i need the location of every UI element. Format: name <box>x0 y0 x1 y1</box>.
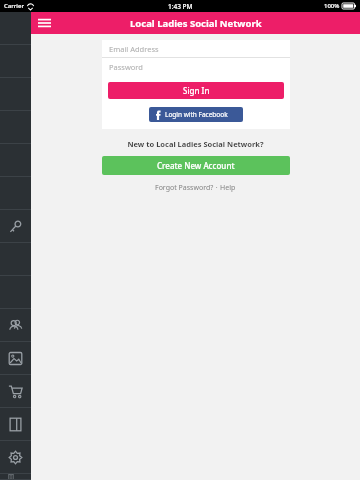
button[interactable]: Password <box>102 58 290 75</box>
staticText: · <box>214 183 220 193</box>
staticText: 100% <box>324 2 340 10</box>
button[interactable]: Shop <box>0 375 31 408</box>
staticText: Login with Facebook <box>165 110 228 119</box>
staticText: Password <box>109 62 143 72</box>
button[interactable]: Friends <box>0 309 31 342</box>
button[interactable]: Create New Account <box>102 156 290 175</box>
staticText: Help <box>220 183 236 193</box>
button[interactable]: Settings <box>0 441 31 474</box>
button[interactable]: Email Address <box>102 40 290 57</box>
button[interactable]: More <box>0 474 31 480</box>
staticText: Forgot Password? <box>155 183 214 193</box>
staticText: 1:43 PM <box>168 2 193 11</box>
button[interactable]: Sign In <box>108 82 284 99</box>
staticText: New to Local Ladies Social Network? <box>127 139 264 149</box>
staticText: Local Ladies Social Network <box>130 17 262 30</box>
staticText: Sign In <box>183 85 210 96</box>
button[interactable]: Login with Facebook <box>149 107 243 122</box>
button[interactable]: Keys <box>0 210 31 243</box>
button[interactable]: Help <box>220 183 236 193</box>
button[interactable]: Photos <box>0 342 31 375</box>
staticText: Email Address <box>109 44 159 54</box>
button[interactable]: Book <box>0 408 31 441</box>
button[interactable]: Menu <box>34 13 54 33</box>
staticText: Carrier <box>4 2 24 10</box>
button[interactable]: Forgot Password? <box>155 183 214 193</box>
staticText: Create New Account <box>157 160 235 171</box>
